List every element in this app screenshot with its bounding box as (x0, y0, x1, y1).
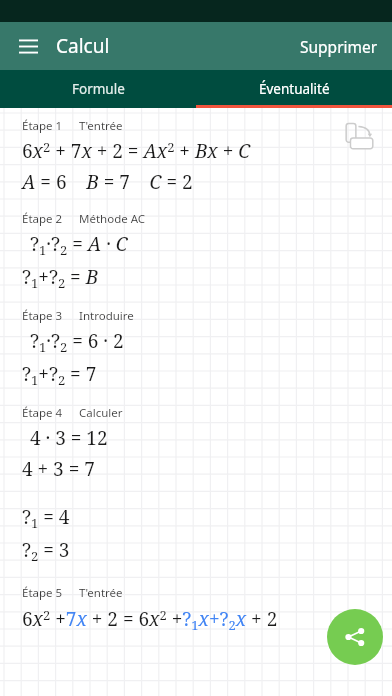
staticText: ?1+?2 = B (22, 264, 99, 292)
staticText: Introduire (79, 308, 134, 324)
staticText: Étape 1 (22, 118, 63, 134)
staticText: 6x2 + 7x + 2 = Ax2 + Bx + C (22, 138, 251, 164)
button[interactable]: Éventualité (196, 70, 392, 108)
staticText: 6x2 +7x + 2 = 6x2 +?1x+?2x + 2 (22, 606, 278, 634)
staticText: ?1·?2 = 6 · 2 (30, 328, 124, 356)
staticText: Éventualité (259, 80, 330, 98)
staticText: T'entrée (79, 118, 123, 134)
staticText: ?1 = 4 (22, 504, 70, 532)
staticText: Étape 2 (22, 211, 63, 227)
staticText: Calculer (79, 405, 123, 421)
button[interactable]: Supprimer (286, 22, 392, 70)
staticText: Méthode AC (79, 211, 146, 227)
staticText: 4 · 3 = 12 (30, 425, 108, 451)
staticText: Formule (72, 80, 125, 98)
staticText: Étape 5 (22, 585, 63, 601)
staticText: 4 + 3 = 7 (22, 456, 95, 482)
staticText: ?1+?2 = 7 (22, 361, 97, 389)
button[interactable]: Menu (8, 26, 48, 66)
staticText: Calcul (56, 33, 110, 59)
button[interactable]: Rotate device (340, 116, 384, 160)
button[interactable]: Share (327, 609, 383, 665)
staticText: Supprimer (300, 36, 378, 57)
staticText: Étape 4 (22, 405, 63, 421)
staticText: T'entrée (79, 585, 123, 601)
staticText: ?1·?2 = A · C (30, 231, 128, 259)
button[interactable]: Formule (0, 70, 196, 108)
staticText: Étape 3 (22, 308, 63, 324)
staticText: A = 6 B = 7 C = 2 (22, 169, 193, 195)
staticText: ?2 = 3 (22, 537, 70, 565)
